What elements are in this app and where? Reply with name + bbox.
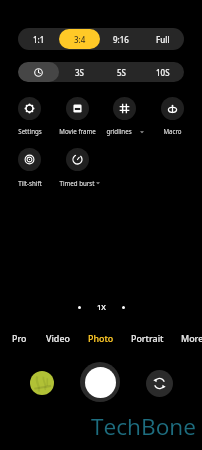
button[interactable]: 1X <box>97 302 106 312</box>
button[interactable]: Gallery <box>30 371 54 395</box>
button[interactable]: Settings <box>18 97 41 120</box>
button[interactable]: Switch camera <box>146 370 173 397</box>
button[interactable]: Full <box>142 28 184 50</box>
button[interactable]: Portrait <box>127 329 168 347</box>
staticText: Photo <box>88 332 114 344</box>
button[interactable]: 3:4 <box>59 29 100 49</box>
button[interactable]: Timed burst <box>66 148 89 171</box>
button[interactable]: Timed burst <box>59 179 95 187</box>
button[interactable]: Zoom 0.6x <box>78 306 81 309</box>
button[interactable]: Zoom 2x <box>122 306 125 309</box>
button[interactable]: Tilt-shift <box>18 148 41 171</box>
button[interactable]: Macro <box>163 127 182 135</box>
button[interactable]: Movie frame <box>59 127 96 135</box>
button[interactable]: Photo <box>84 329 118 347</box>
button[interactable]: 3S <box>59 62 100 82</box>
button[interactable]: Tilt-shift <box>18 179 42 187</box>
staticText: 5S <box>117 67 126 78</box>
staticText: 3S <box>75 67 84 78</box>
button[interactable]: Shutter <box>80 362 120 402</box>
button[interactable]: 1:1 <box>18 28 59 50</box>
staticText: 1:1 <box>33 34 45 45</box>
button[interactable]: Macro <box>161 97 184 120</box>
button[interactable]: Settings <box>18 127 42 135</box>
staticText: Portrait <box>131 332 164 344</box>
staticText: 10S <box>156 67 170 78</box>
button[interactable]: More <box>177 329 202 347</box>
button[interactable]: 5S <box>100 62 142 82</box>
button[interactable]: gridlines <box>113 97 136 120</box>
button[interactable]: 10S <box>142 62 184 82</box>
button[interactable]: Video <box>42 329 74 347</box>
staticText: 9:16 <box>113 34 129 45</box>
button[interactable]: gridlines <box>106 127 132 135</box>
staticText: More <box>181 332 202 344</box>
staticText: TechBone <box>91 411 196 442</box>
staticText: 3:4 <box>74 34 86 45</box>
button[interactable]: Pro <box>8 329 31 347</box>
button[interactable]: Movie frame <box>66 97 89 120</box>
button[interactable]: 9:16 <box>100 28 142 50</box>
staticText: Pro <box>12 332 27 344</box>
staticText: Video <box>46 332 70 344</box>
button[interactable]: Timer off <box>18 62 59 82</box>
staticText: Full <box>156 34 170 45</box>
